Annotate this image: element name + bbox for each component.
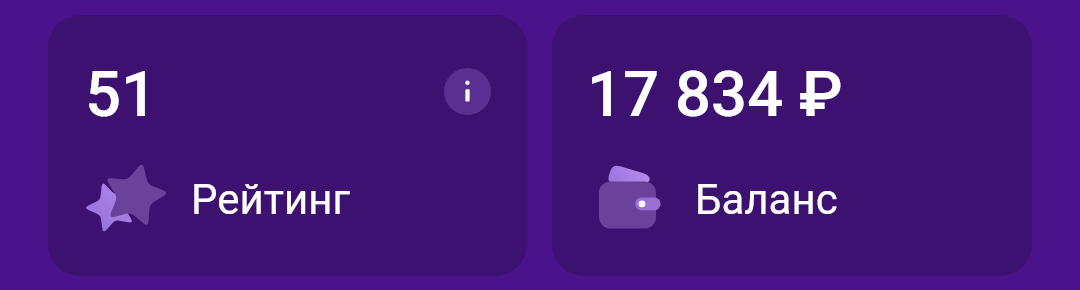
staticText: 51 — [85, 57, 158, 131]
button[interactable]: 17 834 ₽ — [552, 15, 1032, 276]
staticText: Баланс — [695, 175, 838, 224]
staticText: Рейтинг — [191, 175, 351, 224]
button[interactable]: Information about rating — [444, 68, 491, 115]
staticText: 17 834 ₽ — [587, 57, 843, 131]
button[interactable]: 51 — [48, 15, 527, 276]
